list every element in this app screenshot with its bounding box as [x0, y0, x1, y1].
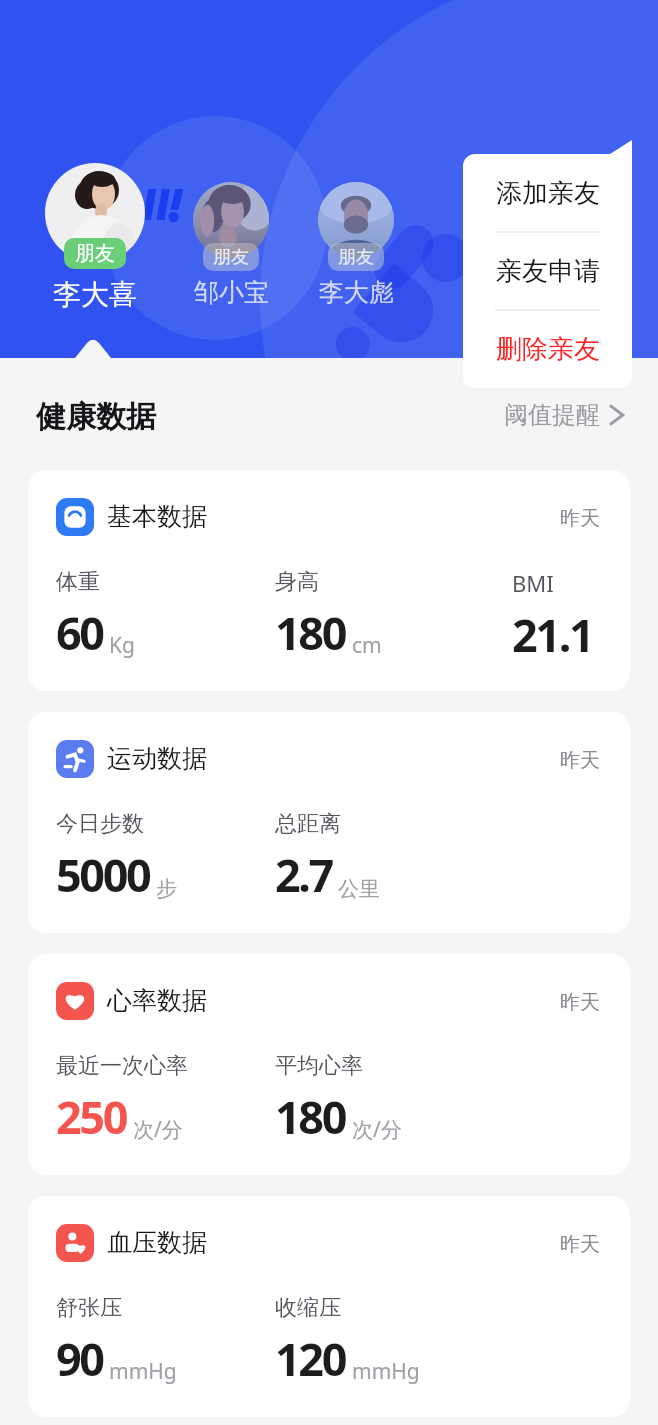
staticText: 90 [56, 1328, 103, 1389]
button[interactable]: 心率数据 [28, 954, 630, 1175]
button[interactable]: 添加亲友 [463, 154, 632, 232]
staticText: 身高 [275, 568, 319, 596]
staticText: 心率数据 [107, 985, 207, 1016]
staticText: 收缩压 [275, 1294, 341, 1322]
staticText: 120 [275, 1328, 346, 1389]
staticText: 60 [56, 602, 103, 663]
staticText: mmHg [352, 1357, 420, 1386]
staticText: 总距离 [275, 810, 341, 838]
staticText: mmHg [109, 1357, 177, 1386]
staticText: 步 [156, 876, 177, 902]
staticText: 朋友 [213, 246, 249, 269]
staticText: 添加亲友 [496, 177, 600, 210]
staticText: 21.1 [512, 604, 593, 665]
staticText: 5000 [56, 844, 150, 905]
staticText: 180 [275, 1086, 346, 1147]
staticText: 李大喜 [53, 277, 137, 312]
staticText: 昨天 [560, 748, 600, 773]
button[interactable]: 阈值提醒 [504, 400, 625, 430]
staticText: 最近一次心率 [56, 1052, 188, 1080]
staticText: 基本数据 [107, 501, 207, 532]
staticText: 180 [275, 602, 346, 663]
staticText: 2.7 [275, 844, 332, 905]
staticText: 健康数据 [36, 398, 156, 436]
staticText: BMI [512, 568, 554, 598]
staticText: Kg [109, 631, 135, 660]
staticText: cm [352, 631, 382, 660]
staticText: 今日步数 [56, 810, 144, 838]
staticText: 亲友申请 [496, 255, 600, 288]
staticText: 删除亲友 [496, 333, 600, 366]
staticText: 运动数据 [107, 743, 207, 774]
staticText: 邹小宝 [194, 277, 269, 308]
staticText: 250 [56, 1086, 127, 1147]
staticText: 阈值提醒 [504, 400, 600, 430]
button[interactable]: 亲友申请 [463, 232, 632, 310]
staticText: 平均心率 [275, 1052, 363, 1080]
staticText: 昨天 [560, 1232, 600, 1257]
staticText: 公里 [338, 876, 380, 902]
button[interactable]: 朋友 [37, 157, 153, 307]
staticText: 次/分 [133, 1115, 183, 1144]
staticText: 朋友 [75, 241, 115, 266]
staticText: 次/分 [352, 1115, 402, 1144]
button[interactable]: 朋友 [298, 176, 414, 326]
staticText: 朋友 [338, 246, 374, 269]
button[interactable]: 基本数据 [28, 470, 630, 691]
button[interactable]: 血压数据 [28, 1196, 630, 1417]
staticText: 昨天 [560, 506, 600, 531]
button[interactable]: 删除亲友 [463, 310, 632, 388]
button[interactable]: 运动数据 [28, 712, 630, 933]
staticText: 舒张压 [56, 1294, 122, 1322]
staticText: 血压数据 [107, 1227, 207, 1258]
staticText: 李大彪 [319, 277, 394, 308]
button[interactable]: 朋友 [173, 176, 289, 326]
staticText: 体重 [56, 568, 100, 596]
staticText: 昨天 [560, 990, 600, 1015]
